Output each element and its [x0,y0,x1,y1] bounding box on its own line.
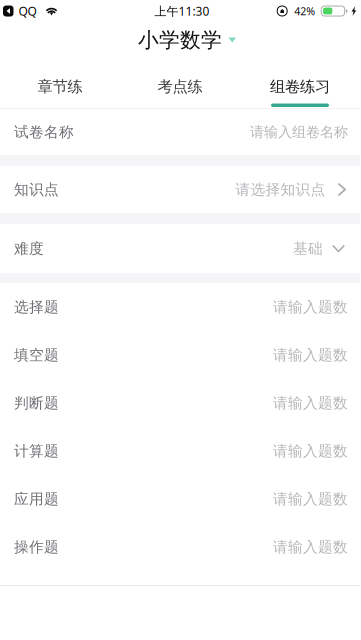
staticText: 上午11:30 [154,3,209,19]
staticText: 判断题 [14,394,59,412]
staticText: 试卷名称 [14,123,74,141]
staticText: 应用题 [14,490,59,508]
button[interactable]: 章节练 [0,58,120,108]
button[interactable]: 选择题 [0,283,360,331]
staticText: 组卷练习 [270,77,330,96]
button[interactable]: 难度 [0,224,360,273]
staticText: 42% [294,4,315,18]
staticText: 请选择知识点 [235,180,325,199]
button[interactable]: 组卷练习 [240,58,360,108]
staticText: 请输入题数 [273,490,348,508]
staticText: 计算题 [14,442,59,460]
staticText: QQ [18,3,36,19]
staticText: 请输入题数 [273,394,348,412]
staticText: 填空题 [14,346,59,364]
staticText: 章节练 [37,77,82,96]
button[interactable]: 计算题 [0,427,360,475]
button[interactable]: 应用题 [0,475,360,523]
staticText: 请输入题数 [273,298,348,316]
staticText: 小学数学 [138,27,222,53]
staticText: 请输入题数 [273,346,348,364]
staticText: 请输入组卷名称 [250,123,348,141]
staticText: 操作题 [14,538,59,556]
staticText: 请输入题数 [273,538,348,556]
button[interactable]: 填空题 [0,331,360,379]
button[interactable]: 试卷名称 [0,109,360,155]
button[interactable]: 考点练 [120,58,240,108]
staticText: 选择题 [14,298,59,316]
button[interactable]: 操作题 [0,523,360,571]
staticText: 知识点 [14,180,59,199]
button[interactable]: 判断题 [0,379,360,427]
staticText: 难度 [14,239,44,258]
button[interactable]: 知识点 [0,166,360,213]
staticText: 请输入题数 [273,442,348,460]
staticText: 考点练 [157,77,202,96]
staticText: 基础 [293,239,323,258]
